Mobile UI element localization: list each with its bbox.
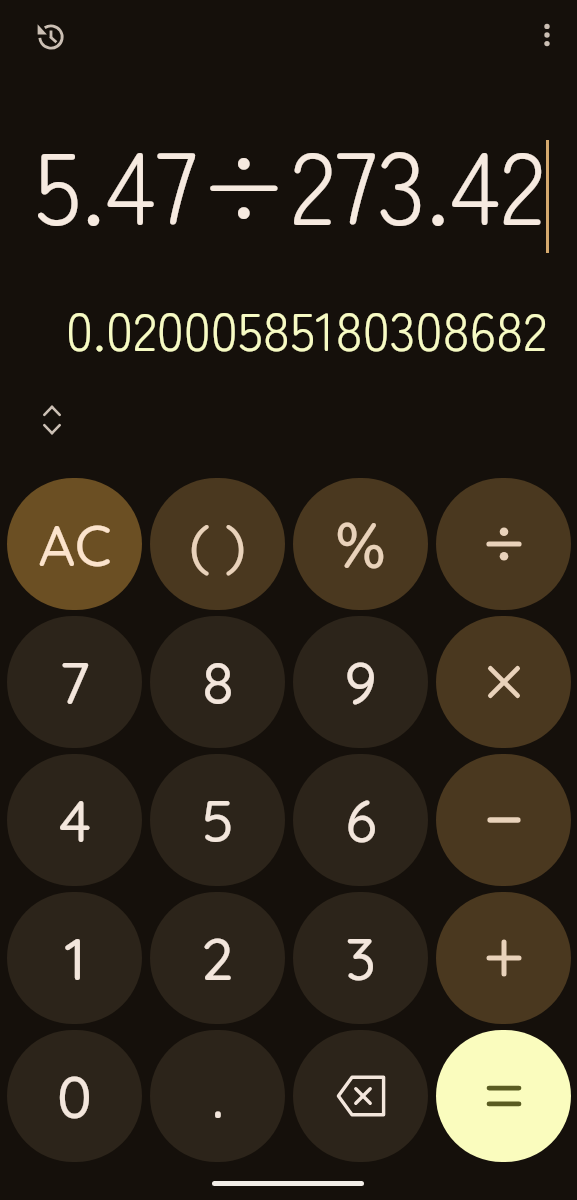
other: Multiply bbox=[482, 660, 526, 704]
button[interactable]: 3 bbox=[293, 892, 428, 1024]
staticText: 0 bbox=[57, 1060, 92, 1133]
button[interactable]: 7 bbox=[7, 616, 142, 748]
staticText: 4 bbox=[59, 784, 91, 857]
staticText: % bbox=[335, 504, 386, 584]
staticText: ( ) bbox=[189, 509, 246, 579]
staticText: 6 bbox=[345, 784, 377, 857]
button[interactable]: 9 bbox=[293, 616, 428, 748]
staticText: 5 bbox=[201, 784, 234, 857]
button[interactable]: 0 bbox=[7, 1030, 142, 1162]
staticText: 9 bbox=[344, 646, 377, 719]
button[interactable]: Expand bbox=[28, 396, 75, 443]
button[interactable]: Divide bbox=[436, 478, 571, 610]
button[interactable]: AC bbox=[7, 478, 142, 610]
button[interactable]: 2 bbox=[150, 892, 285, 1024]
staticText: AC bbox=[38, 509, 112, 580]
button[interactable]: 1 bbox=[7, 892, 142, 1024]
button[interactable]: History bbox=[27, 13, 74, 60]
button[interactable]: Multiply bbox=[436, 616, 571, 748]
button[interactable]: Plus bbox=[436, 892, 571, 1024]
button[interactable]: 5 bbox=[150, 754, 285, 886]
other: Equals bbox=[482, 1074, 526, 1118]
staticText: 1 bbox=[64, 922, 86, 995]
button[interactable]: Backspace bbox=[293, 1030, 428, 1162]
other: Minus bbox=[482, 798, 526, 842]
other: Plus bbox=[482, 936, 526, 980]
staticText: 3 bbox=[345, 922, 376, 995]
staticText: 0.02000585180308682 bbox=[66, 289, 548, 366]
button[interactable]: Equals bbox=[436, 1030, 571, 1162]
other: History bbox=[36, 22, 66, 52]
button[interactable]: ( ) bbox=[150, 478, 285, 610]
button[interactable]: 6 bbox=[293, 754, 428, 886]
button[interactable]: Minus bbox=[436, 754, 571, 886]
staticText: 7 bbox=[59, 646, 90, 719]
staticText: 8 bbox=[202, 646, 234, 719]
button[interactable]: 4 bbox=[7, 754, 142, 886]
other: Backspace bbox=[333, 1068, 389, 1124]
button[interactable]: 8 bbox=[150, 616, 285, 748]
staticText: 5.47÷273.42 bbox=[34, 108, 546, 228]
other: Divide bbox=[482, 522, 526, 566]
staticText: 2 bbox=[201, 922, 234, 995]
button[interactable]: . bbox=[150, 1030, 285, 1162]
button[interactable]: More options bbox=[523, 11, 570, 58]
button[interactable]: % bbox=[293, 478, 428, 610]
staticText: . bbox=[212, 1060, 224, 1133]
other: Expand bbox=[36, 404, 68, 436]
